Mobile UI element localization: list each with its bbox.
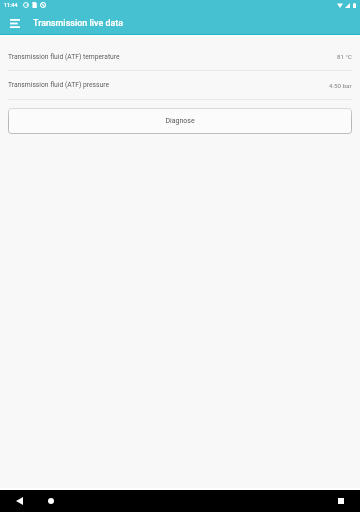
button[interactable]: Back	[8, 490, 30, 512]
button[interactable]: Home	[40, 490, 62, 512]
staticText: 4.50 bar	[329, 82, 352, 89]
staticText: 81 °C	[337, 53, 352, 60]
button[interactable]: Diagnose	[8, 108, 352, 134]
staticText: Diagnose	[165, 117, 195, 125]
staticText: Transmission live data	[33, 18, 124, 28]
staticText: Transmission fluid (ATF) pressure	[8, 81, 110, 89]
button[interactable]: Transmission fluid (ATF) temperature	[0, 43, 360, 71]
staticText: Transmission fluid (ATF) temperature	[8, 53, 120, 61]
staticText: 11:44	[4, 2, 18, 8]
button[interactable]: Recent apps	[330, 490, 352, 512]
button[interactable]: Transmission fluid (ATF) pressure	[0, 71, 360, 100]
button[interactable]: Open navigation menu	[0, 12, 29, 34]
